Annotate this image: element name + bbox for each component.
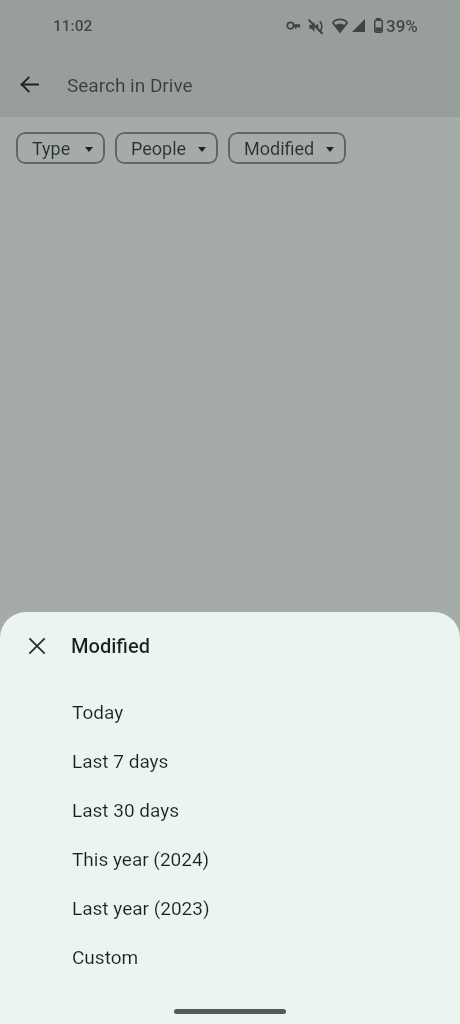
button[interactable]: Last 30 days xyxy=(0,785,460,834)
button[interactable]: Last 7 days xyxy=(0,736,460,785)
button[interactable]: People xyxy=(115,132,218,164)
staticText: 39% xyxy=(386,16,418,36)
staticText: Modified xyxy=(71,634,150,657)
button[interactable]: Last year (2023) xyxy=(0,883,460,932)
button[interactable]: Modified xyxy=(228,132,346,164)
staticText: Type xyxy=(32,138,71,159)
button[interactable]: Today xyxy=(0,687,460,736)
staticText: People xyxy=(131,138,187,159)
staticText: Search in Drive xyxy=(67,74,193,96)
staticText: Custom xyxy=(72,946,139,968)
staticText: Modified xyxy=(244,138,315,159)
staticText: This year (2024) xyxy=(72,848,210,870)
button[interactable]: Type xyxy=(16,132,105,164)
button[interactable]: Close xyxy=(19,628,55,664)
staticText: Last year (2023) xyxy=(72,897,210,919)
staticText: Today xyxy=(72,701,124,723)
button[interactable]: Back xyxy=(5,60,53,108)
staticText: Last 7 days xyxy=(72,750,169,772)
staticText: Last 30 days xyxy=(72,799,180,821)
button[interactable]: This year (2024) xyxy=(0,834,460,883)
button[interactable]: Custom xyxy=(0,932,460,981)
staticText: 11:02 xyxy=(53,17,93,35)
